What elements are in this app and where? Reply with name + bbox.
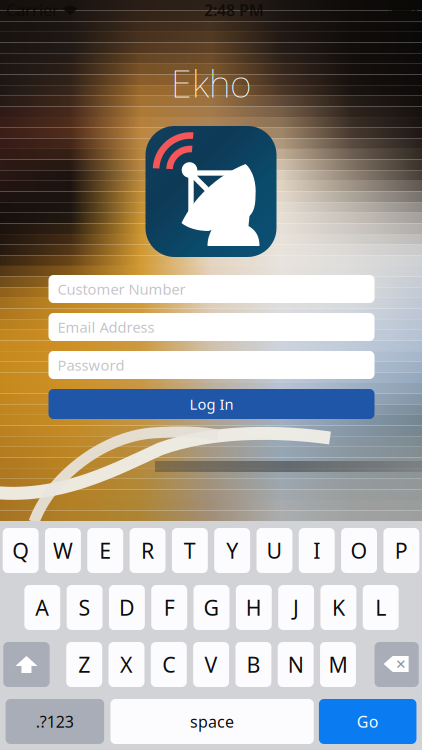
staticText: V (205, 650, 218, 679)
staticText: B (246, 650, 260, 679)
staticText: S (79, 593, 91, 622)
button[interactable]: Z (66, 642, 102, 687)
staticText: Q (12, 536, 29, 565)
button[interactable]: Shift (3, 642, 50, 687)
staticText: O (351, 536, 368, 565)
button[interactable]: A (24, 585, 60, 630)
staticText: Customer Number (57, 279, 185, 299)
button[interactable]: Email Address (48, 313, 374, 341)
button[interactable]: L (363, 585, 399, 630)
staticText: M (328, 650, 347, 679)
button[interactable]: W (45, 528, 81, 573)
button[interactable]: Y (214, 528, 250, 573)
button[interactable]: space (110, 699, 314, 744)
button[interactable]: M (320, 642, 356, 687)
staticText: Ekho (171, 58, 251, 108)
button[interactable]: Q (3, 528, 39, 573)
staticText: Carrier (6, 0, 59, 21)
staticText: 2:48 PM (204, 0, 264, 21)
button[interactable]: V (193, 642, 229, 687)
button[interactable]: E (87, 528, 123, 573)
button[interactable]: Go (319, 699, 416, 744)
button[interactable]: X (108, 642, 144, 687)
button[interactable]: T (172, 528, 208, 573)
button[interactable]: J (278, 585, 314, 630)
button[interactable]: Password (48, 351, 374, 379)
staticText: Password (57, 355, 124, 375)
button[interactable]: I (299, 528, 335, 573)
button[interactable]: R (130, 528, 165, 573)
staticText: .?123 (36, 711, 74, 732)
staticText: Go (357, 711, 379, 732)
button[interactable]: G (194, 585, 229, 630)
staticText: W (53, 536, 73, 565)
staticText: G (203, 593, 219, 622)
button[interactable]: Customer Number (48, 275, 374, 303)
button[interactable]: S (67, 585, 103, 630)
staticText: Log In (189, 394, 233, 414)
button[interactable]: Log In (48, 389, 374, 419)
staticText: Y (226, 536, 238, 565)
staticText: D (119, 593, 135, 622)
button[interactable]: H (236, 585, 272, 630)
staticText: A (35, 593, 49, 622)
staticText: H (246, 593, 262, 622)
staticText: J (293, 593, 299, 622)
button[interactable]: F (151, 585, 187, 630)
staticText: R (141, 536, 154, 565)
button[interactable]: .?123 (6, 699, 104, 744)
staticText: space (190, 711, 234, 732)
staticText: C (162, 650, 175, 679)
staticText: N (288, 650, 304, 679)
button[interactable]: O (341, 528, 377, 573)
staticText: I (313, 536, 320, 565)
staticText: Z (78, 650, 90, 679)
staticText: ✕ (395, 657, 406, 672)
button[interactable]: D (109, 585, 145, 630)
staticText: F (164, 593, 175, 622)
staticText: T (184, 536, 196, 565)
staticText: U (266, 536, 282, 565)
staticText: K (332, 593, 345, 622)
staticText: X (120, 650, 133, 679)
staticText: E (99, 536, 111, 565)
button[interactable]: P (383, 528, 419, 573)
button[interactable]: B (235, 642, 271, 687)
staticText: Email Address (57, 317, 154, 337)
staticText: L (375, 593, 386, 622)
button[interactable]: U (256, 528, 292, 573)
button[interactable]: C (151, 642, 187, 687)
button[interactable]: Delete (375, 642, 419, 687)
button[interactable]: N (278, 642, 314, 687)
staticText: P (395, 536, 408, 565)
button[interactable]: K (320, 585, 356, 630)
